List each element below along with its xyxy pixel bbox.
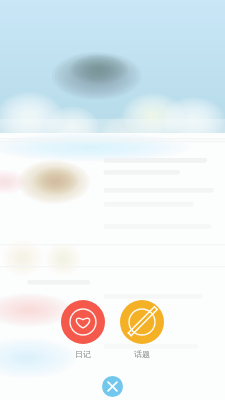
button[interactable]: 话题 — [120, 300, 164, 359]
button[interactable]: Close — [102, 376, 123, 397]
staticText: 话题 — [120, 349, 164, 359]
button[interactable]: 日记 — [61, 300, 105, 359]
staticText: 日记 — [61, 349, 105, 359]
